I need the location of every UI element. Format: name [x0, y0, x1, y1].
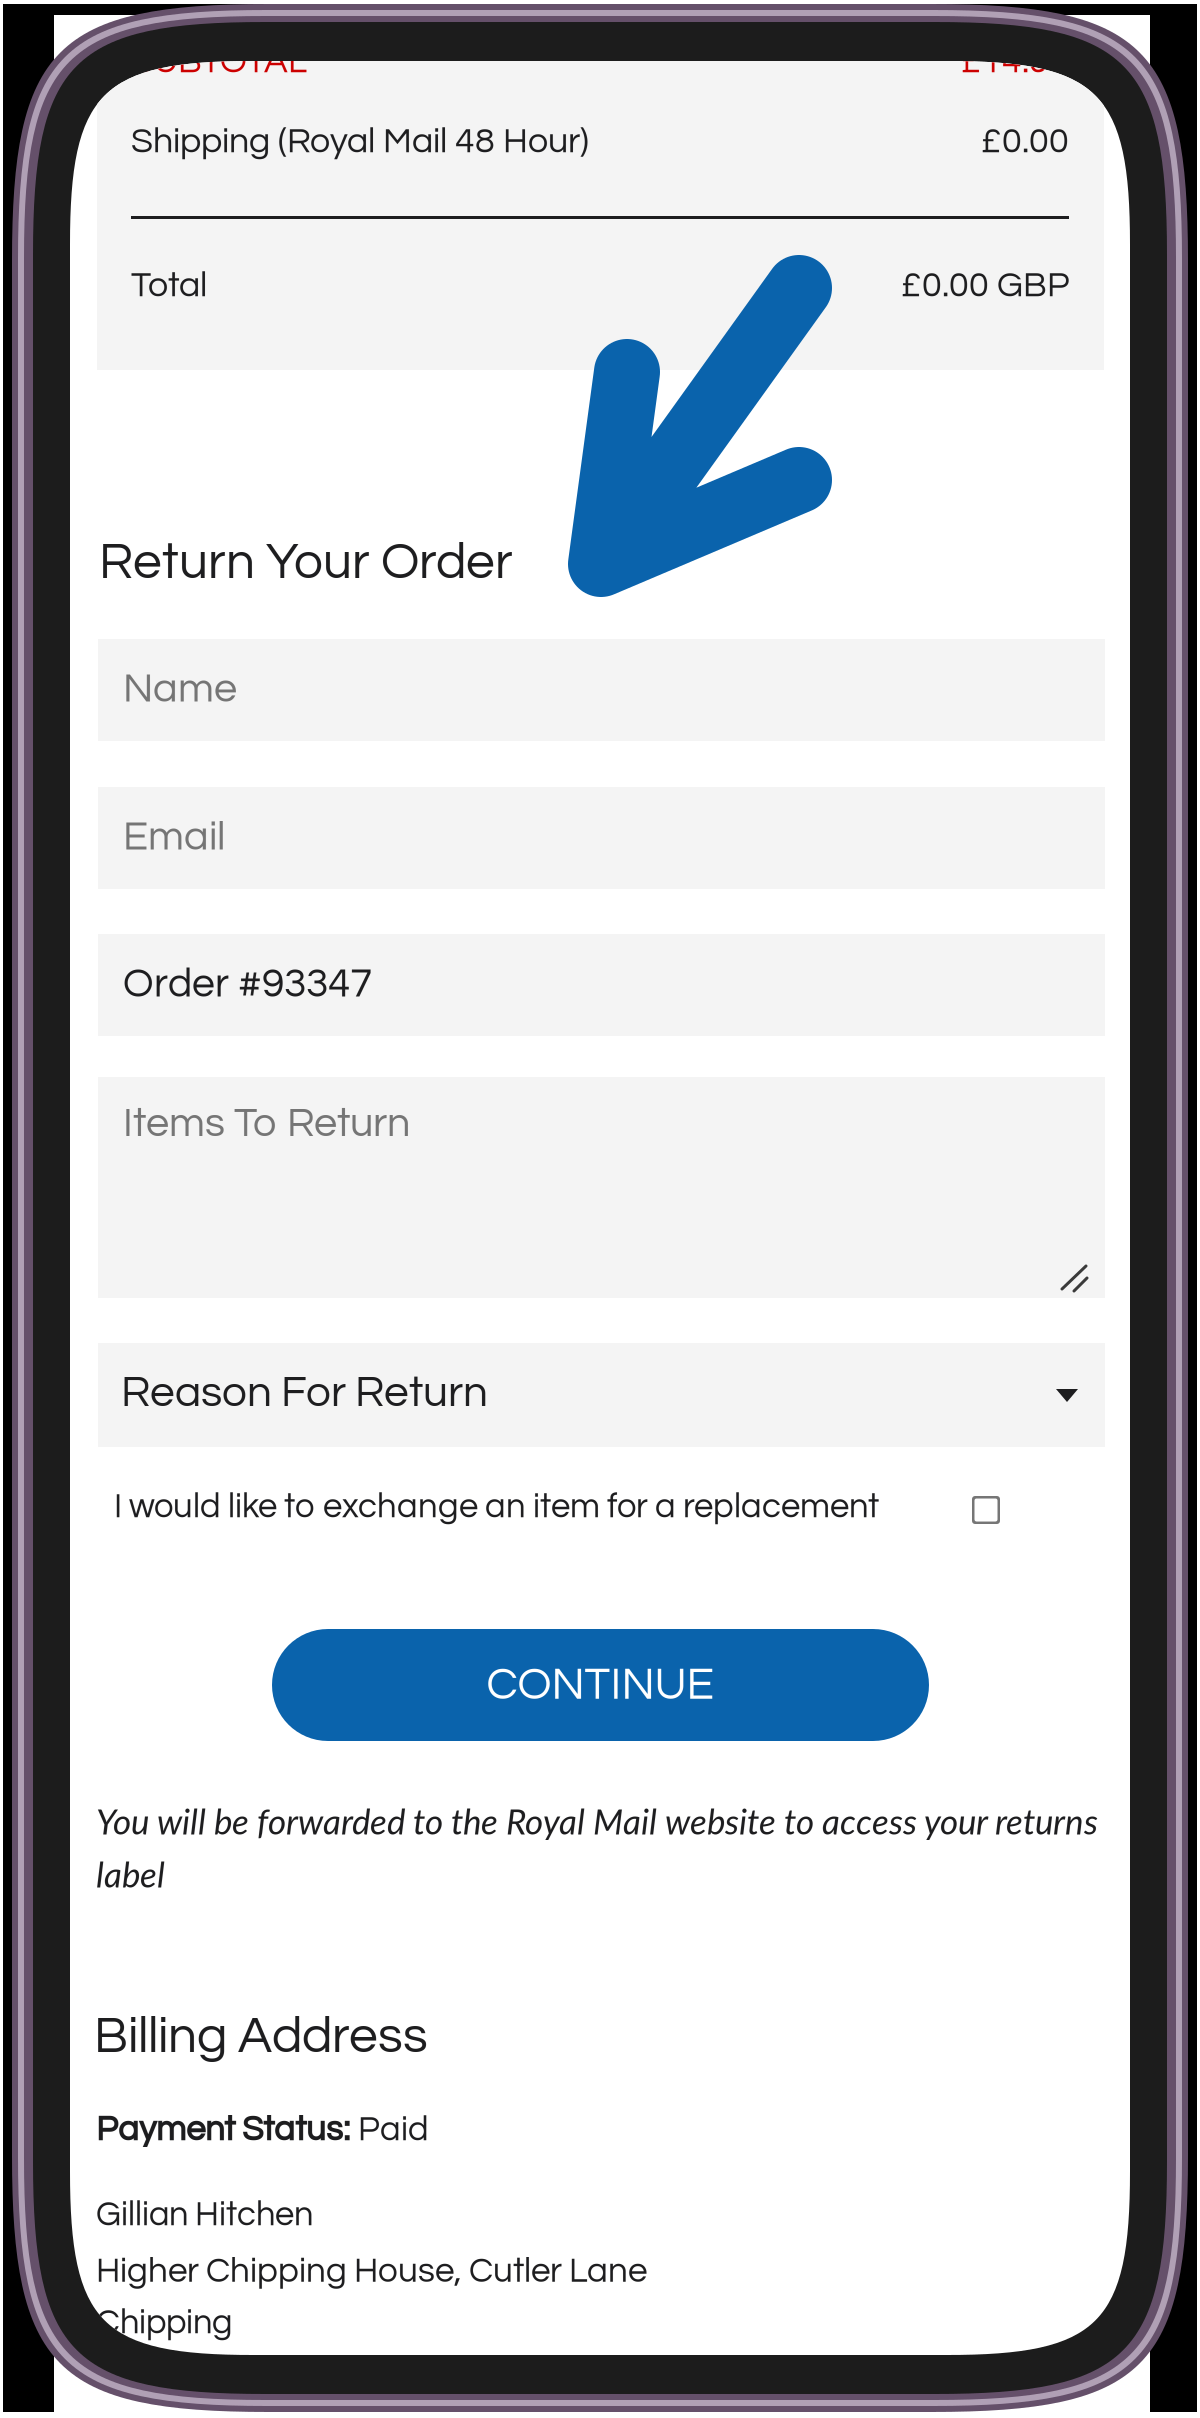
staticText: Name [123, 668, 237, 710]
staticText: Email [123, 816, 225, 858]
staticText: £14.99 [961, 43, 1069, 80]
staticText: Total [131, 267, 207, 304]
staticText: £0.00 GBP [901, 267, 1069, 304]
staticText: Items To Return [123, 1102, 410, 1145]
button[interactable]: I would like to exchange an item for a r… [114, 1475, 1004, 1541]
staticText: Paid [358, 2112, 429, 2148]
staticText: Billing Address [94, 2010, 428, 2063]
staticText: CONTINUE [486, 1662, 714, 1708]
staticText: Reason For Return [121, 1370, 488, 1415]
staticText: You will be forwarded to the Royal Mail … [96, 1800, 1098, 1842]
staticText: Higher Chipping House, Cutler Lane [96, 2253, 647, 2289]
button[interactable]: Reason For Return [98, 1343, 1105, 1447]
staticText: Payment Status: [96, 2112, 350, 2148]
staticText: Chipping [96, 2305, 232, 2340]
staticText: label [96, 1853, 165, 1895]
staticText: SUBTOTAL [131, 43, 307, 80]
staticText: Gillian Hitchen [96, 2197, 313, 2232]
button[interactable]: CONTINUE [272, 1629, 929, 1741]
staticText: Shipping (Royal Mail 48 Hour) [131, 123, 589, 160]
staticText: Order #93347 [123, 963, 372, 1005]
staticText: £0.00 [981, 123, 1069, 160]
staticText: Return Your Order [99, 536, 513, 589]
staticText: I would like to exchange an item for a r… [114, 1489, 879, 1525]
